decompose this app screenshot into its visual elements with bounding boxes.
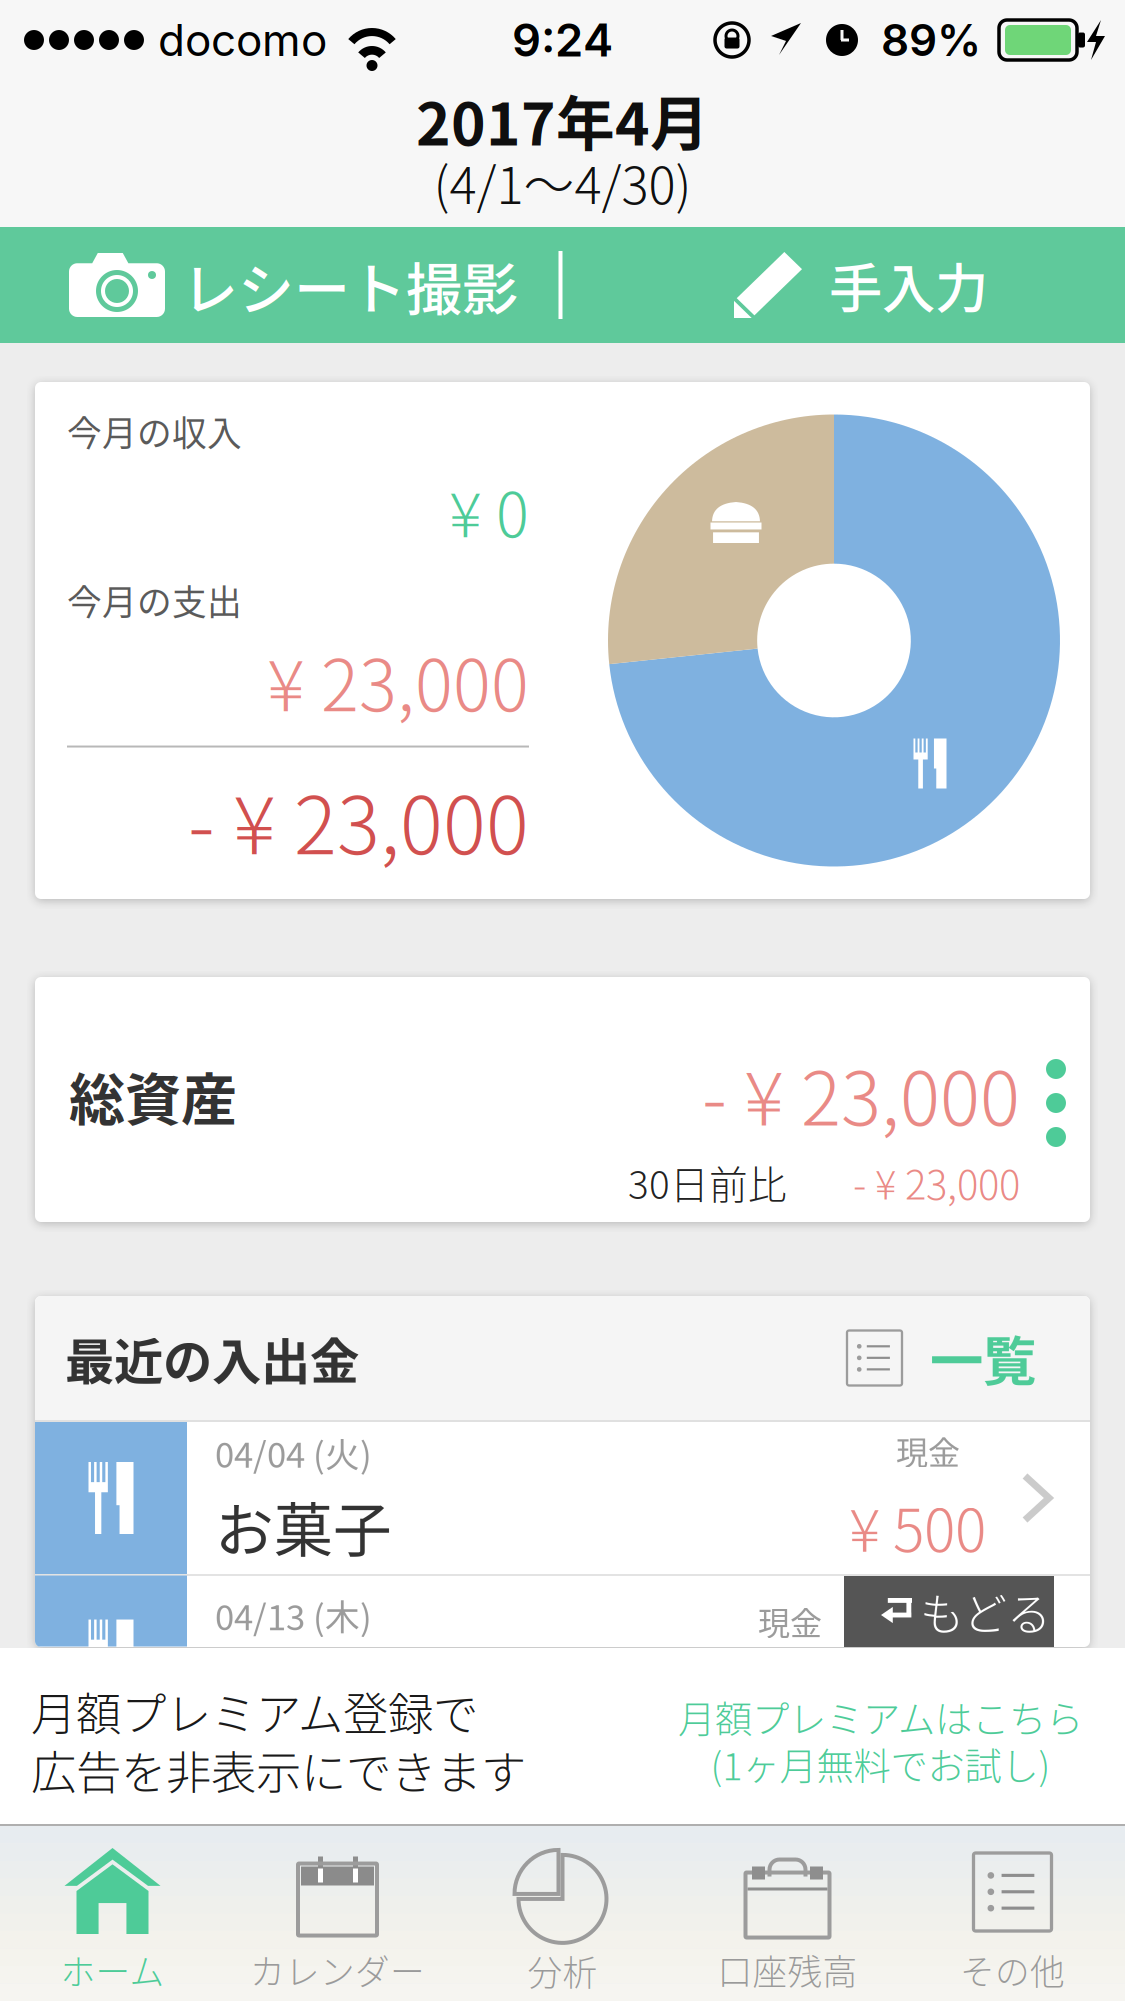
staticText: - ¥ 23,000	[188, 761, 529, 877]
staticText: カレンダー	[250, 1945, 425, 1995]
button[interactable]: その他	[900, 1826, 1125, 2001]
button[interactable]: 月額プレミアム登録で	[0, 1648, 1125, 1824]
staticText: (1ヶ月無料でお試し)	[710, 1737, 1050, 1791]
staticText: - ¥ 23,000	[853, 1153, 1020, 1211]
staticText: 手入力	[829, 246, 988, 324]
staticText: 今月の支出	[67, 575, 242, 625]
staticText: docomo	[158, 13, 327, 67]
staticText: 04/13 (木)	[215, 1590, 372, 1640]
staticText: 89%	[881, 13, 981, 67]
staticText: その他	[960, 1945, 1065, 1995]
button[interactable]: 一覧	[847, 1296, 1036, 1420]
button[interactable]: 総資産	[35, 977, 1090, 1222]
staticText: 最近の入出金	[65, 1322, 359, 1394]
staticText: もどる	[920, 1580, 1051, 1643]
staticText: 2017年4月	[416, 77, 709, 162]
staticText: 分析	[527, 1946, 597, 1996]
staticText: ¥ 500	[849, 1484, 986, 1569]
staticText: 一覧	[930, 1319, 1036, 1397]
button[interactable]: 口座残高	[675, 1826, 900, 2001]
button[interactable]: 分析	[450, 1826, 675, 2001]
staticText: 今月の収入	[67, 406, 242, 456]
button[interactable]: カレンダー	[225, 1826, 450, 2001]
button[interactable]: 04/04 (火)	[35, 1422, 1090, 1574]
staticText: ¥ 0	[449, 466, 529, 555]
button[interactable]: もどる	[844, 1576, 1054, 1647]
staticText: 9:24	[512, 13, 613, 67]
staticText: 30日前比	[628, 1154, 787, 1210]
staticText: 広告を非表示にできます	[31, 1737, 526, 1803]
staticText: ホーム	[60, 1945, 164, 1995]
staticText: 月額プレミアムはこちら	[678, 1690, 1083, 1744]
staticText: レシート撮影	[182, 244, 518, 326]
staticText: 現金	[758, 1598, 822, 1644]
staticText: お菓子	[215, 1484, 392, 1569]
staticText: - ¥ 23,000	[702, 1039, 1020, 1147]
button[interactable]: ホーム	[0, 1826, 225, 2001]
button[interactable]: 手入力	[562, 227, 1125, 343]
staticText: 口座残高	[717, 1945, 857, 1995]
staticText: 月額プレミアム登録で	[31, 1678, 478, 1744]
staticText: 04/04 (火)	[215, 1427, 372, 1478]
button[interactable]: レシート撮影	[0, 227, 562, 343]
staticText: 現金	[896, 1427, 960, 1474]
staticText: ¥ 23,000	[267, 629, 529, 731]
staticText: 総資産	[69, 1055, 237, 1136]
staticText: (4/1〜4/30)	[433, 145, 691, 219]
